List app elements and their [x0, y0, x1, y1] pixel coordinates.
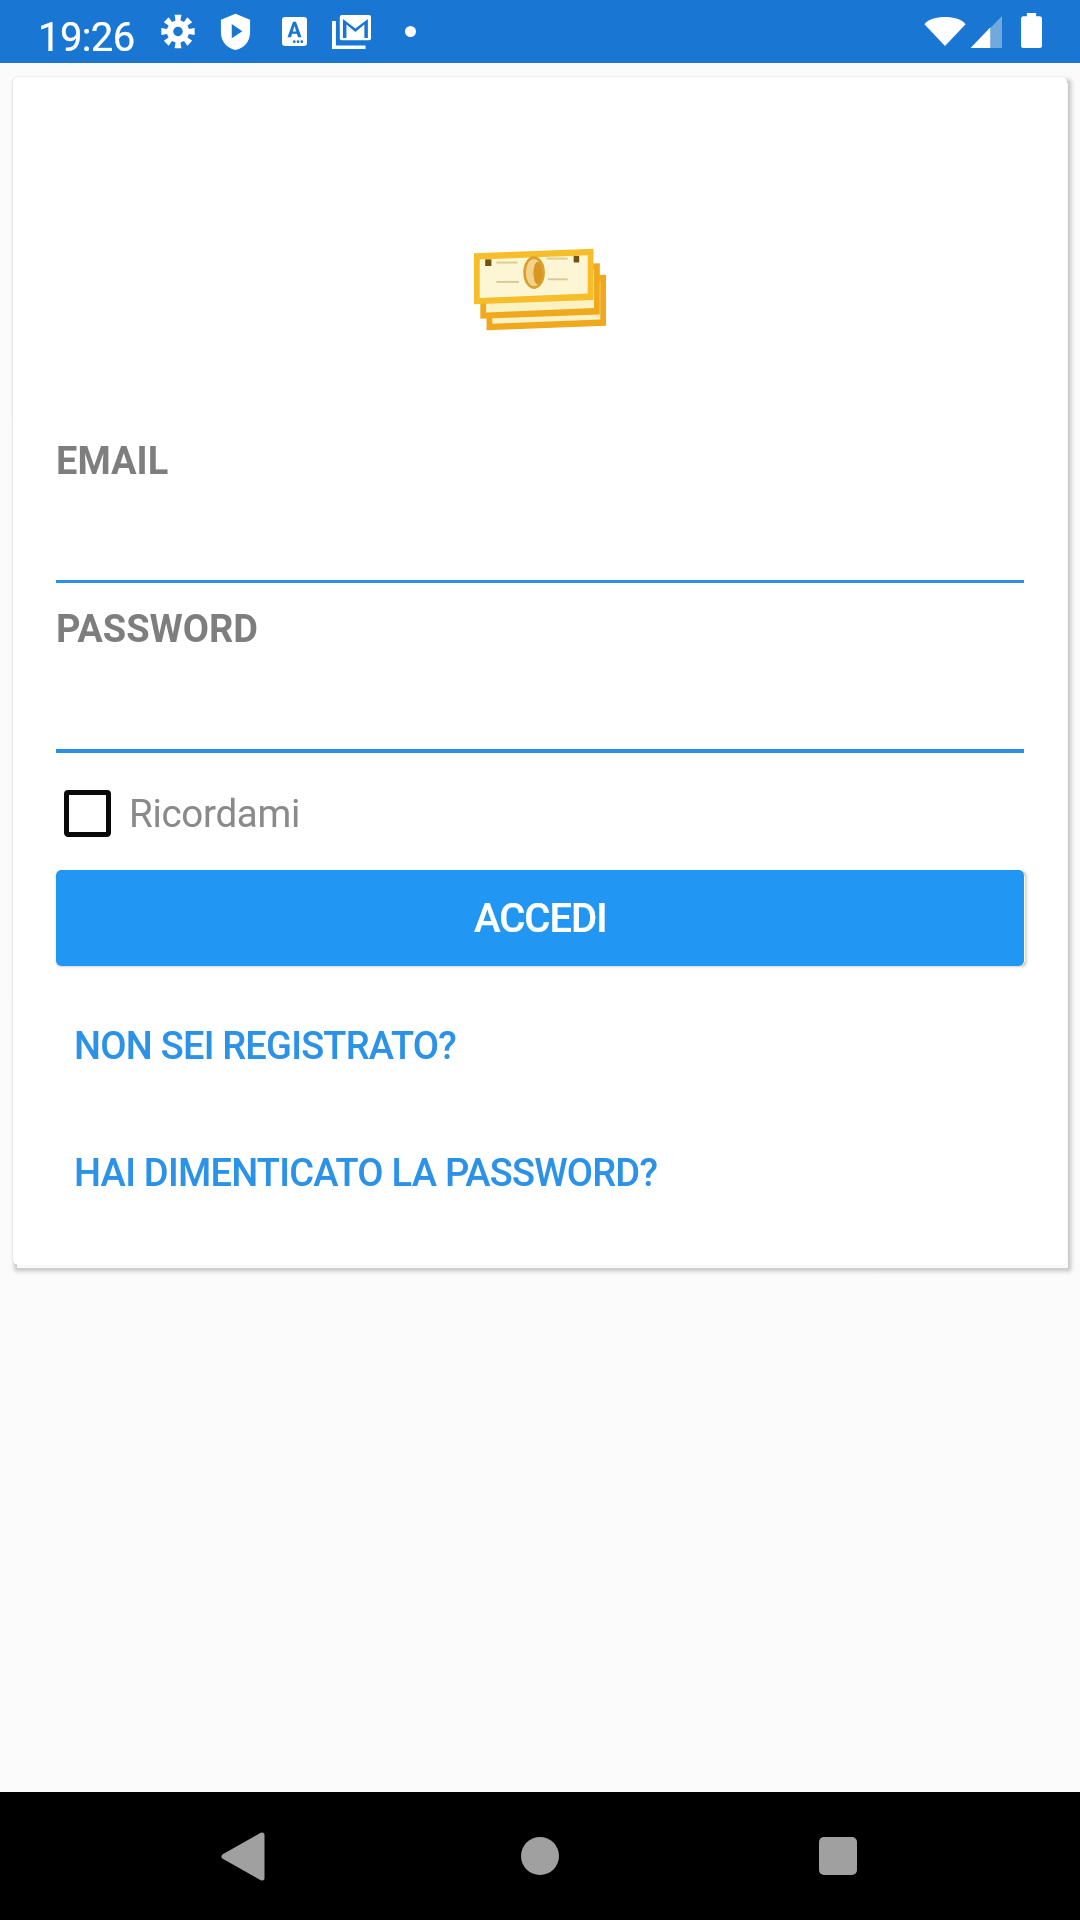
- staticText: PASSWORD: [56, 607, 258, 652]
- button[interactable]: ACCEDI: [56, 870, 1024, 966]
- button[interactable]: HAI DIMENTICATO LA PASSWORD?: [61, 1129, 671, 1218]
- button[interactable]: Ricordami: [64, 790, 300, 837]
- staticText: ACCEDI: [474, 895, 607, 942]
- staticText: 19:26: [38, 14, 135, 61]
- button[interactable]: NON SEI REGISTRATO?: [61, 1002, 470, 1091]
- button[interactable]: Home: [485, 1801, 595, 1911]
- staticText: EMAIL: [56, 439, 169, 484]
- staticText: HAI DIMENTICATO LA PASSWORD?: [74, 1151, 658, 1196]
- staticText: NON SEI REGISTRATO?: [74, 1024, 457, 1069]
- staticText: Ricordami: [129, 791, 300, 836]
- button[interactable]: Back: [188, 1801, 298, 1911]
- button[interactable]: Recent apps: [783, 1801, 893, 1911]
